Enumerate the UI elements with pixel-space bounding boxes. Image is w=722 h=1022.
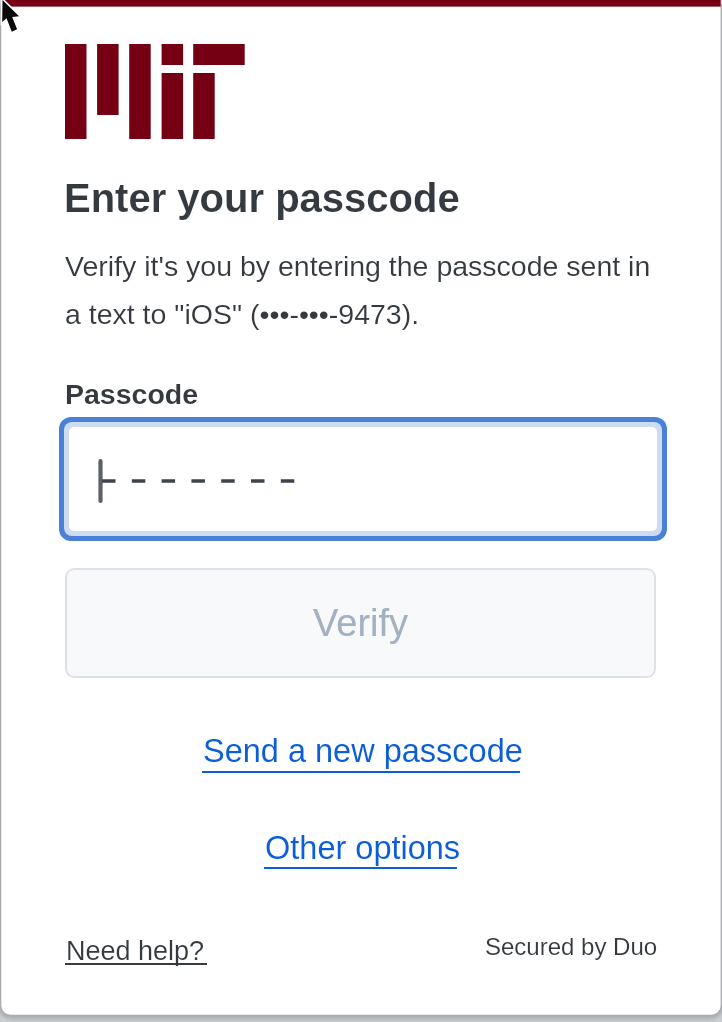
button[interactable]: Need help? bbox=[65, 936, 207, 968]
staticText: Verify it's you by entering the passcode… bbox=[65, 250, 665, 330]
staticText: Other options bbox=[265, 830, 461, 866]
staticText: Verify bbox=[313, 602, 409, 644]
staticText: Send a new passcode bbox=[203, 733, 523, 769]
staticText: Passcode bbox=[65, 378, 199, 410]
staticText: Need help? bbox=[66, 936, 205, 966]
button[interactable]: Passcode input bbox=[69, 427, 657, 531]
staticText: Secured by Duo bbox=[485, 933, 658, 960]
other: Pointer bbox=[0, 0, 30, 40]
button[interactable]: Verify bbox=[65, 568, 656, 678]
button[interactable]: Other options bbox=[264, 830, 460, 868]
button[interactable]: Send a new passcode bbox=[202, 733, 522, 771]
staticText: Enter your passcode bbox=[64, 176, 460, 221]
